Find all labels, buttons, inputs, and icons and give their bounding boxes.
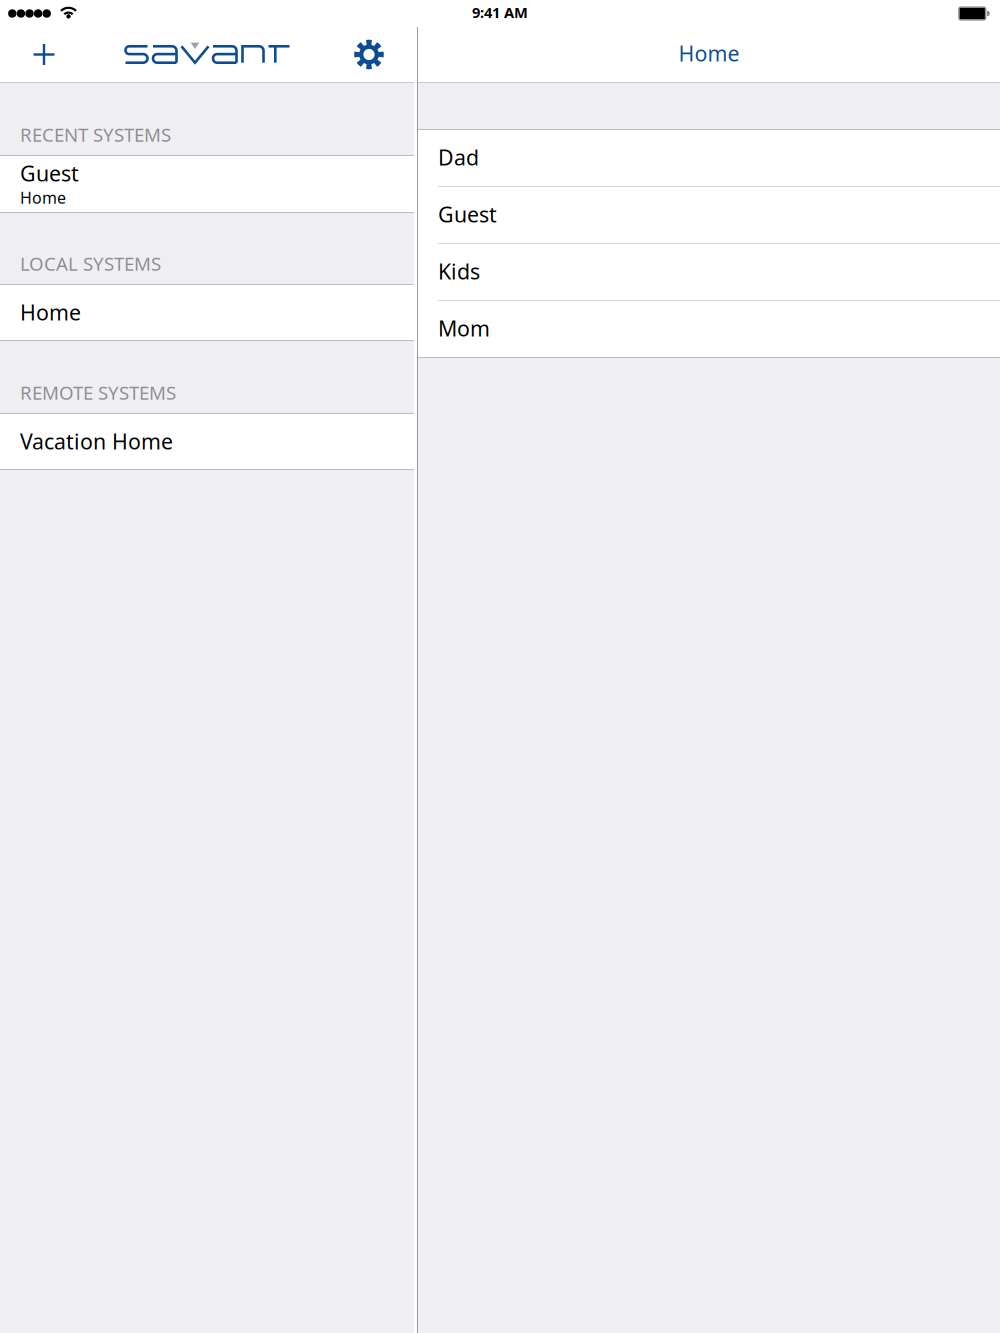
button[interactable]: Add System (25, 35, 63, 73)
staticText: RECENT SYSTEMS (20, 122, 171, 147)
staticText: Home (20, 298, 81, 326)
staticText: Dad (438, 143, 479, 171)
button[interactable]: Mom (418, 301, 1000, 357)
staticText: Home (678, 39, 739, 67)
staticText: Home (20, 187, 66, 208)
staticText: LOCAL SYSTEMS (20, 251, 161, 276)
button[interactable]: Guest (0, 156, 414, 212)
staticText: Kids (438, 257, 480, 285)
button[interactable]: Kids (418, 244, 1000, 300)
button[interactable]: Settings (354, 39, 384, 69)
staticText: Guest (438, 200, 497, 228)
staticText: REMOTE SYSTEMS (20, 380, 176, 405)
button[interactable]: Home (0, 285, 414, 340)
staticText: 9:41 AM (472, 2, 528, 22)
button[interactable]: Guest (418, 187, 1000, 243)
button[interactable]: Dad (418, 130, 1000, 186)
button[interactable]: Vacation Home (0, 414, 414, 469)
staticText: Mom (438, 314, 490, 342)
staticText: Guest (20, 159, 79, 187)
staticText: Vacation Home (20, 427, 173, 455)
